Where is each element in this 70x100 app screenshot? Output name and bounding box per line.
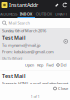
button[interactable]: DRAFT bbox=[52, 10, 70, 18]
staticText: OUTBOX bbox=[36, 11, 52, 17]
staticText: From: kabukisan@gmail.com bbox=[2, 49, 54, 54]
button[interactable]: Compose bbox=[53, 2, 61, 7]
staticText: Mail Search bbox=[9, 20, 30, 26]
button[interactable]: Close bbox=[51, 84, 70, 92]
staticText: Del bbox=[60, 62, 66, 68]
staticText: Test Mail bbox=[2, 34, 26, 41]
button[interactable]: INBOX bbox=[17, 10, 35, 18]
button[interactable]: ADDRESS bbox=[0, 10, 17, 18]
button[interactable]: Open bbox=[23, 61, 35, 68]
button[interactable]: Message details bbox=[63, 34, 68, 44]
button[interactable]: Rep bbox=[35, 61, 45, 68]
staticText: Fwd bbox=[46, 62, 53, 68]
button[interactable]: Del bbox=[55, 61, 68, 68]
staticText: Close bbox=[58, 86, 68, 91]
staticText: Open bbox=[25, 62, 34, 68]
button[interactable]: Refresh bbox=[61, 2, 68, 8]
staticText: Supports HTML e-mail and attachment file… bbox=[2, 81, 68, 91]
button[interactable]: Fwd bbox=[45, 61, 55, 68]
staticText: InstantAddr bbox=[9, 1, 38, 9]
button[interactable]: Mail Search bbox=[0, 18, 70, 28]
staticText: 06:15 (Mon) bbox=[2, 55, 22, 61]
button[interactable]: OUTBOX bbox=[35, 10, 52, 18]
staticText: To: myname@mail.jp bbox=[2, 42, 40, 48]
staticText: Test Mail bbox=[2, 72, 26, 79]
staticText: Sunday 6th of March 2016 bbox=[2, 28, 46, 33]
staticText: Rep bbox=[37, 62, 43, 68]
staticText: DRAFT bbox=[55, 11, 67, 17]
staticText: ADDRESS bbox=[0, 11, 17, 17]
staticText: 1 of 1 bbox=[30, 94, 39, 99]
staticText: INBOX bbox=[20, 11, 33, 17]
